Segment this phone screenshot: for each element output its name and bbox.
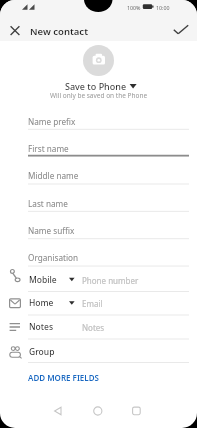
button[interactable] — [60, 79, 138, 93]
button[interactable] — [6, 20, 26, 40]
button[interactable] — [28, 190, 189, 214]
staticText: Group — [29, 346, 55, 358]
button[interactable] — [0, 292, 197, 315]
staticText: Organisation — [28, 252, 79, 263]
staticText: Last name — [28, 198, 68, 209]
staticText: 10:00 — [156, 4, 170, 11]
button[interactable] — [170, 20, 190, 40]
staticText: New contact — [30, 25, 88, 38]
button[interactable] — [0, 268, 197, 291]
staticText: 100% — [127, 4, 141, 11]
staticText: ADD MORE FIELDS — [28, 372, 99, 383]
button[interactable] — [83, 45, 114, 76]
button[interactable] — [28, 244, 189, 268]
staticText: Email — [82, 298, 103, 309]
button[interactable] — [79, 398, 119, 428]
button[interactable] — [28, 108, 189, 132]
staticText: Name prefix — [28, 116, 76, 127]
staticText: Save to Phone — [65, 80, 127, 92]
button[interactable] — [120, 398, 160, 428]
staticText: First name — [28, 143, 69, 154]
button[interactable] — [28, 162, 189, 186]
staticText: Name suffix — [28, 225, 75, 236]
staticText: Notes — [29, 321, 54, 333]
staticText: Middle name — [28, 170, 79, 181]
button[interactable] — [38, 398, 78, 428]
button[interactable] — [28, 217, 189, 241]
staticText: Home — [29, 297, 54, 309]
button[interactable] — [0, 315, 197, 338]
button[interactable] — [28, 135, 189, 159]
button[interactable] — [24, 368, 104, 385]
staticText: Will only be saved on the Phone — [50, 91, 148, 100]
staticText: Phone number — [82, 275, 139, 286]
button[interactable] — [0, 339, 197, 362]
staticText: Mobile — [29, 274, 57, 286]
staticText: Notes — [82, 322, 105, 333]
